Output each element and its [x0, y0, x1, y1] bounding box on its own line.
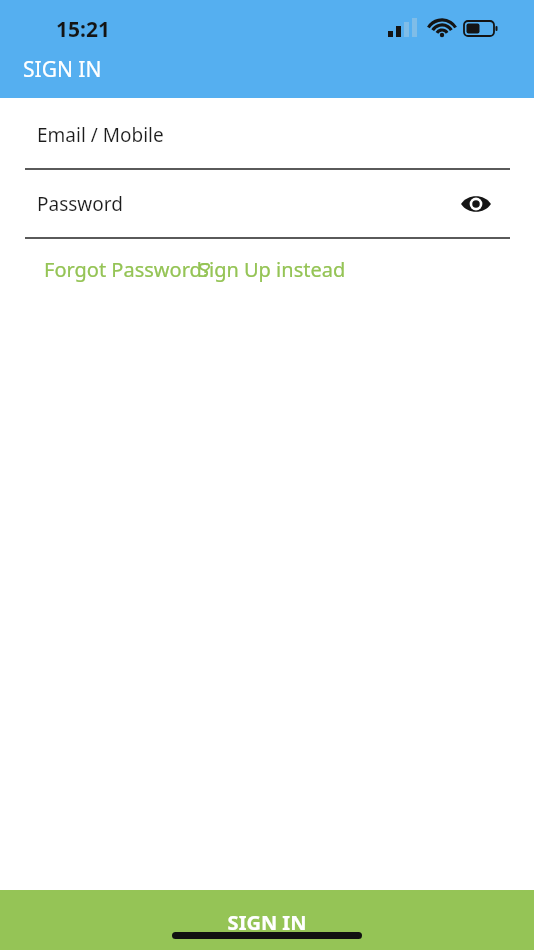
button[interactable]: Show password — [456, 184, 496, 224]
button[interactable]: SIGN IN — [0, 890, 534, 950]
button[interactable]: Forgot Password? — [44, 256, 211, 283]
staticText: SIGN IN — [0, 909, 534, 936]
staticText: 15:21 — [56, 15, 110, 44]
staticText: Email / Mobile — [37, 122, 164, 148]
staticText: SIGN IN — [23, 55, 102, 84]
button[interactable]: Password — [0, 170, 534, 239]
button[interactable]: Email / Mobile — [0, 98, 534, 170]
staticText: Sign Up instead — [198, 256, 346, 283]
button[interactable]: Sign Up instead — [198, 256, 346, 283]
staticText: Password — [37, 191, 123, 217]
staticText: Forgot Password? — [44, 256, 211, 283]
